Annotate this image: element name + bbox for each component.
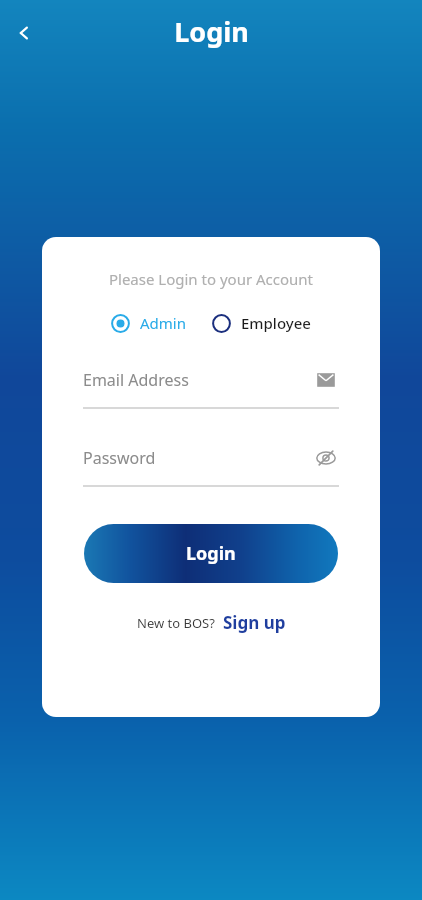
button[interactable]: Back xyxy=(2,11,46,55)
button[interactable]: Admin xyxy=(111,313,186,333)
staticText: Admin xyxy=(140,313,186,333)
staticText: Email Address xyxy=(83,369,313,391)
staticText: Please Login to your Account xyxy=(42,269,380,289)
staticText: Sign up xyxy=(223,611,286,634)
button[interactable]: Employee xyxy=(212,313,311,333)
staticText: New to BOS? xyxy=(137,614,215,632)
staticText: Password xyxy=(83,447,313,469)
button[interactable]: Password xyxy=(83,445,339,471)
button[interactable]: Email xyxy=(313,367,339,393)
button[interactable]: Email Address xyxy=(83,367,339,393)
staticText: Employee xyxy=(241,313,311,333)
button[interactable]: Show password xyxy=(313,445,339,471)
button[interactable]: Login xyxy=(84,524,338,583)
staticText: Login xyxy=(186,541,236,566)
button[interactable]: Sign up xyxy=(223,611,286,634)
staticText: Login xyxy=(174,13,249,50)
